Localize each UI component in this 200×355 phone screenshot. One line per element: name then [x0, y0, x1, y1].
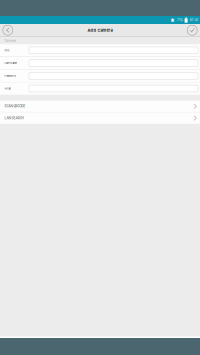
staticText: DID [4, 49, 9, 52]
staticText: Add Camera [87, 28, 112, 33]
staticText: 07:41 [190, 18, 198, 22]
staticText: Username [4, 61, 17, 65]
staticText: Camera [4, 39, 16, 43]
staticText: SCAN QRCODE [4, 104, 25, 108]
button[interactable]: Back [2, 24, 14, 36]
button[interactable]: Save [186, 24, 198, 36]
staticText: LAN SEARCH [4, 116, 23, 120]
staticText: Alias [4, 87, 10, 90]
staticText: 71% [177, 18, 183, 22]
staticText: Password [4, 74, 16, 77]
button[interactable]: SCAN QRCODE [0, 101, 200, 112]
button[interactable]: LAN SEARCH [0, 112, 200, 124]
